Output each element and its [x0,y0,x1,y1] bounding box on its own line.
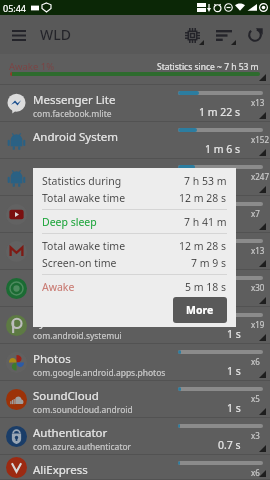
staticText: com.google.android.youtube [33,219,149,231]
staticText: 5 m 18 s [185,280,227,294]
staticText: Awake [42,280,75,294]
staticText: System UI [33,314,88,330]
staticText: 1 m 6 s [205,142,241,156]
staticText: Awake 1% [9,60,55,73]
staticText: Android System [33,129,119,145]
staticText: x3 [251,430,260,441]
staticText: 12 m 28 s [179,191,227,205]
staticText: x5 [251,393,260,404]
staticText: 0.7 s [218,438,241,452]
button[interactable]: Sort [211,22,237,48]
staticText: Deep sleep [42,215,97,229]
staticText: com.google.android.gm [33,256,130,268]
button[interactable]: Android System [0,159,270,196]
staticText: com.android.systemui [33,330,122,342]
button[interactable]: SoundCloud [0,381,270,418]
staticText: 7 h 41 m [184,215,227,229]
staticText: SoundCloud [33,388,99,404]
staticText: x30 [251,282,265,293]
button[interactable]: AliExpress [0,455,270,480]
staticText: com.soundcloud.android [33,404,133,416]
staticText: Gmail [33,240,65,256]
staticText: WhatsApp [33,277,89,293]
button[interactable]: Processor stats [179,22,205,48]
staticText: com.google.android.apps.photos [33,367,166,379]
staticText: 1 s [227,401,241,415]
staticText: WLD [40,25,71,44]
staticText: 05:44 [3,2,27,14]
staticText: x247 [251,171,269,182]
staticText: Screen-on time [42,256,117,270]
staticText: com.facebook.mlite [33,108,112,120]
staticText: x13 [251,97,265,108]
button[interactable]: YouTube [0,196,270,233]
staticText: 7 h 53 m [184,174,227,188]
button[interactable]: Refresh [242,22,268,48]
staticText: x7 [251,208,260,219]
staticText: Photos [33,351,71,367]
staticText: Total awake time [42,239,126,253]
button[interactable]: Gmail [0,233,270,270]
button[interactable]: WhatsApp [0,270,270,307]
staticText: x6 [251,356,260,367]
button[interactable]: Authenticator [0,418,270,455]
staticText: x152 [251,134,269,145]
staticText: Statistics during [42,174,122,188]
staticText: Messenger Lite [33,92,116,108]
staticText: com.android.system [33,182,115,194]
staticText: YouTube [33,203,80,219]
staticText: 1 s [227,364,241,378]
staticText: Statistics since ~ 7 h 53 m [157,61,259,73]
staticText: com.azure.authenticator [33,441,132,453]
staticText: Total awake time [42,191,126,205]
button[interactable]: Menu [6,22,32,48]
staticText: 7 m 9 s [191,256,227,270]
button[interactable]: More [173,297,227,323]
staticText: 1 s [227,327,241,341]
button[interactable]: System UI [0,307,270,344]
button[interactable]: Messenger Lite [0,85,270,122]
staticText: x19 [251,319,265,330]
staticText: AliExpress [33,462,88,478]
staticText: Android System [33,166,119,182]
staticText: 12 m 28 s [179,239,227,253]
staticText: x13 [251,245,265,256]
button[interactable]: Android System [0,122,270,159]
staticText: 1 m 22 s [199,105,241,119]
staticText: x6 [251,467,260,478]
staticText: More [186,303,214,317]
staticText: Authenticator [33,425,108,441]
button[interactable]: Photos [0,344,270,381]
